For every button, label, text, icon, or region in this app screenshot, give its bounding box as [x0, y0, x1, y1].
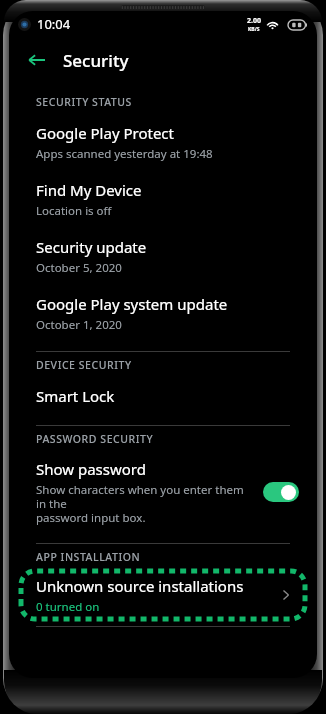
button[interactable]: Find My Device — [9, 171, 317, 228]
button[interactable]: Google Play Protect — [9, 114, 317, 171]
button[interactable]: Google Play system update — [9, 285, 317, 342]
button[interactable]: Back — [19, 43, 53, 77]
staticText: 2.00 — [247, 16, 261, 26]
staticText: October 5, 2020 — [36, 260, 122, 276]
button[interactable]: Show password toggle — [263, 482, 299, 502]
staticText: Google Play system update — [36, 294, 228, 314]
staticText: Show characters when you enter them in t… — [36, 482, 255, 525]
staticText: Unknown source installations — [36, 576, 244, 596]
button[interactable]: Smart Lock — [9, 377, 317, 415]
staticText: 0 turned on — [36, 599, 100, 615]
staticText: KB/S — [248, 26, 260, 33]
button[interactable]: Show password — [9, 451, 317, 533]
button[interactable]: Security update — [9, 228, 317, 285]
staticText: DEVICE SECURITY — [36, 358, 132, 372]
staticText: Show password — [36, 459, 146, 479]
button[interactable]: Unknown source installations — [19, 569, 307, 621]
staticText: PASSWORD SECURITY — [36, 432, 154, 446]
staticText: Security — [63, 49, 129, 72]
staticText: Location is off — [36, 203, 112, 219]
staticText: October 1, 2020 — [36, 317, 122, 333]
staticText: 10:04 — [37, 15, 71, 33]
staticText: Find My Device — [36, 180, 142, 200]
staticText: Security update — [36, 237, 147, 257]
staticText: APP INSTALLATION — [36, 550, 141, 564]
staticText: Smart Lock — [36, 386, 115, 406]
staticText: Apps scanned yesterday at 19:48 — [36, 146, 213, 162]
staticText: Google Play Protect — [36, 123, 174, 143]
staticText: SECURITY STATUS — [36, 95, 132, 109]
